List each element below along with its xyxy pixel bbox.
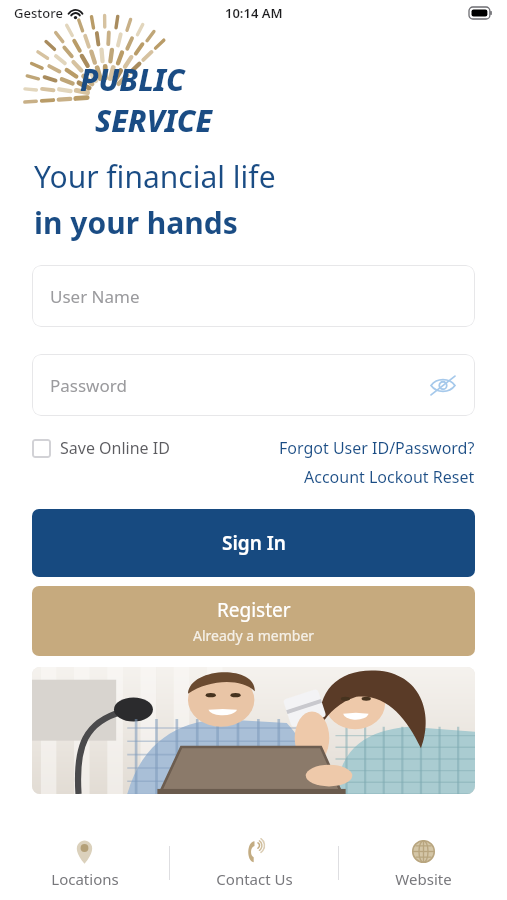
button[interactable]: Account Lockout Reset <box>304 466 475 488</box>
staticText: Save Online ID <box>60 437 170 459</box>
staticText: Locations <box>51 869 119 889</box>
button[interactable]: Locations <box>0 826 169 900</box>
staticText: Password <box>50 374 127 397</box>
staticText: Register <box>217 597 291 623</box>
staticText: Already a member <box>193 626 315 645</box>
staticText: Gestore <box>14 4 63 22</box>
staticText: SERVICE <box>95 100 213 141</box>
button[interactable]: Save Online ID <box>32 437 170 459</box>
button[interactable]: Contact Us <box>170 826 338 900</box>
button[interactable]: Password <box>32 354 475 416</box>
button[interactable]: Show password <box>423 365 463 405</box>
button[interactable]: User Name <box>32 265 475 327</box>
button[interactable]: Website <box>339 826 507 900</box>
staticText: Contact Us <box>216 869 293 889</box>
staticText: in your hands <box>34 202 238 243</box>
button[interactable] <box>32 667 475 794</box>
staticText: 10:14 AM <box>225 4 283 22</box>
staticText: Website <box>395 869 452 889</box>
staticText: Sign In <box>222 530 286 556</box>
staticText: PUBLIC <box>80 59 185 100</box>
button[interactable]: Forgot User ID/Password? <box>279 437 475 459</box>
staticText: Your financial life <box>34 156 276 197</box>
staticText: User Name <box>50 285 140 308</box>
button[interactable]: Sign In <box>32 509 475 577</box>
button[interactable]: Register <box>32 586 475 656</box>
